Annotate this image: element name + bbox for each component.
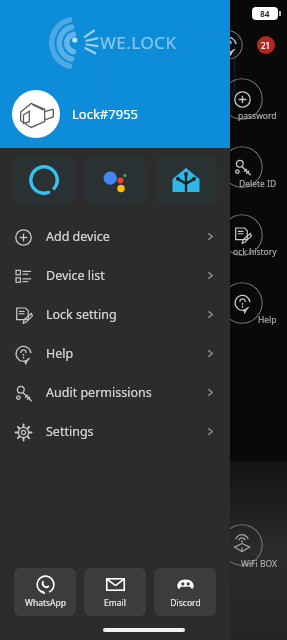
button[interactable]: Add password [221, 78, 263, 120]
staticText: 84 [260, 8, 270, 20]
button[interactable]: Discord [154, 568, 216, 616]
button[interactable]: Lock#7955 [0, 88, 230, 140]
button[interactable]: Settings [0, 412, 230, 451]
button[interactable]: Lock history [221, 214, 263, 256]
staticText: ock history [233, 246, 277, 258]
button[interactable]: Device list [0, 256, 230, 295]
staticText: WhatsApp [25, 597, 66, 609]
staticText: Audit permissions [46, 384, 152, 401]
button[interactable]: Lock setting [0, 295, 230, 334]
button[interactable]: Alexa [13, 155, 75, 205]
staticText: WE.LOCK [100, 31, 177, 54]
staticText: Lock#7955 [72, 105, 139, 123]
button[interactable]: Audit permissions [0, 373, 230, 412]
staticText: Add device [46, 228, 110, 245]
staticText: Email [104, 597, 126, 609]
staticText: Help [258, 314, 277, 326]
staticText: Lock setting [46, 306, 117, 323]
button[interactable]: WiFi Box [221, 524, 263, 566]
button[interactable]: WhatsApp [14, 568, 76, 616]
staticText: 21 [261, 40, 271, 51]
staticText: Discord [170, 597, 201, 609]
button[interactable]: Email [84, 568, 146, 616]
button[interactable]: Google Home [155, 155, 217, 205]
staticText: password [238, 110, 277, 122]
button[interactable]: Delete ID [221, 146, 263, 188]
staticText: Device list [46, 267, 105, 284]
button[interactable]: Add device [0, 217, 230, 256]
button[interactable]: Help [221, 282, 263, 324]
staticText: Help [46, 345, 74, 362]
staticText: WiFi BOX [241, 558, 277, 570]
button[interactable]: Help [0, 334, 230, 373]
button[interactable]: Google Assistant [84, 155, 146, 205]
staticText: Settings [46, 423, 94, 440]
staticText: Delete ID [239, 178, 277, 190]
button[interactable]: Help [213, 30, 243, 60]
